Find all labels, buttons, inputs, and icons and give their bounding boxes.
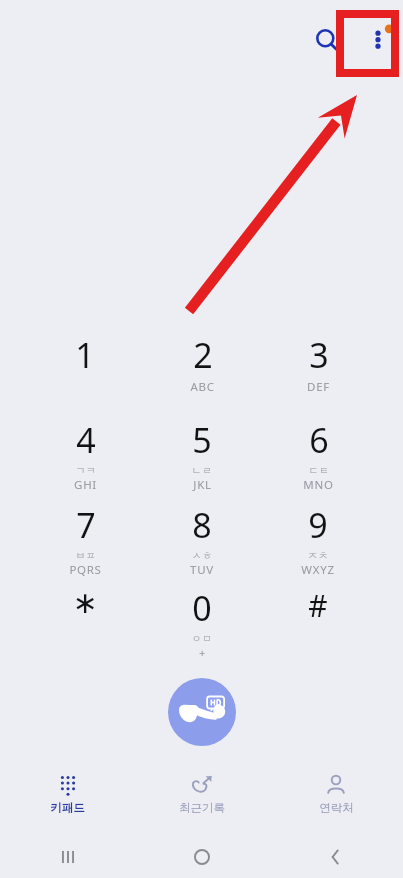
staticText: PQRS: [69, 562, 102, 578]
staticText: ㅅㅎ: [191, 549, 213, 562]
button[interactable]: 연락처: [269, 766, 403, 824]
button[interactable]: 5: [147, 417, 257, 493]
staticText: 5: [192, 417, 212, 463]
staticText: 최근기록: [179, 801, 225, 815]
staticText: ㄴㄹ: [191, 464, 213, 477]
button[interactable]: 0: [147, 585, 257, 661]
button[interactable]: 3: [263, 332, 373, 408]
button[interactable]: 9: [263, 502, 373, 578]
staticText: 키패드: [50, 801, 85, 815]
staticText: ABC: [190, 379, 215, 395]
staticText: 8: [192, 502, 212, 548]
staticText: 3: [309, 332, 329, 378]
staticText: DEF: [307, 379, 330, 395]
staticText: 0: [192, 585, 212, 631]
staticText: ∗: [72, 585, 98, 620]
button[interactable]: 최근기록: [135, 766, 269, 824]
button[interactable]: Recent apps: [0, 836, 135, 878]
button[interactable]: Home: [135, 836, 269, 878]
staticText: WXYZ: [301, 562, 335, 578]
button[interactable]: Call: [168, 678, 236, 746]
button[interactable]: 2: [147, 332, 257, 408]
staticText: MNO: [303, 477, 334, 493]
button[interactable]: Search: [310, 24, 344, 58]
staticText: ㄷㅌ: [308, 464, 330, 477]
staticText: 1: [75, 332, 95, 378]
staticText: ㅂㅍ: [75, 549, 97, 562]
staticText: ㄱㅋ: [75, 464, 97, 477]
staticText: 7: [76, 502, 96, 548]
staticText: 6: [309, 417, 329, 463]
button[interactable]: 1: [30, 332, 140, 408]
staticText: 4: [76, 417, 96, 463]
staticText: ㅇㅁ: [191, 632, 213, 645]
staticText: GHI: [74, 477, 97, 493]
button[interactable]: Back: [269, 836, 403, 878]
button[interactable]: 키패드: [0, 766, 135, 824]
button[interactable]: #: [263, 585, 373, 661]
button[interactable]: 7: [30, 502, 140, 578]
staticText: 9: [308, 502, 328, 548]
button[interactable]: 8: [147, 502, 257, 578]
staticText: #: [308, 585, 328, 626]
staticText: 연락처: [319, 801, 354, 815]
staticText: +: [199, 645, 206, 660]
staticText: TUV: [190, 562, 214, 578]
button[interactable]: 4: [30, 417, 140, 493]
staticText: JKL: [193, 477, 212, 493]
button[interactable]: ∗: [30, 585, 140, 661]
staticText: 2: [193, 332, 213, 378]
button[interactable]: 6: [263, 417, 373, 493]
staticText: ㅈㅊ: [307, 549, 329, 562]
button[interactable]: More options: [362, 22, 396, 56]
